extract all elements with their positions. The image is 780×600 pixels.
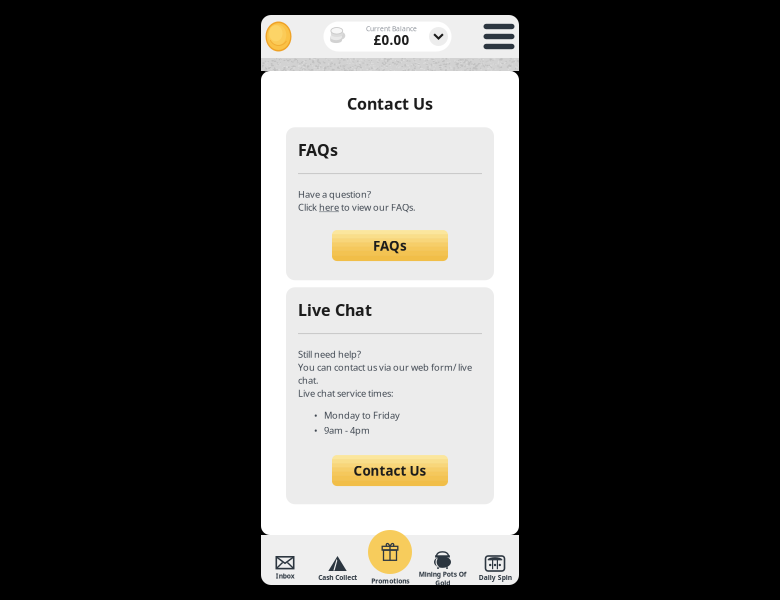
staticText: FAQs — [298, 139, 338, 160]
staticText: Cash Collect — [318, 573, 357, 582]
button[interactable]: Menu — [483, 24, 514, 49]
button[interactable]: Promotions — [364, 535, 416, 585]
staticText: here — [319, 201, 339, 213]
staticText: FAQs — [373, 237, 407, 254]
button[interactable]: Current Balance — [323, 21, 451, 51]
button[interactable]: Mining Pots Of Gold — [416, 535, 469, 585]
staticText: Promotions — [371, 577, 409, 585]
staticText: Still need help? — [298, 348, 361, 360]
staticText: Have a question? — [298, 188, 371, 200]
button[interactable]: Promotions — [368, 530, 412, 574]
staticText: Click — [298, 201, 319, 213]
button[interactable]: FAQs — [332, 230, 448, 261]
staticText: Live chat service times: — [298, 387, 394, 399]
button[interactable]: Coin balance — [265, 21, 291, 51]
staticText: Current Balance — [366, 24, 417, 33]
staticText: Daily Spin — [478, 573, 511, 582]
staticText: Contact Us — [347, 93, 433, 114]
staticText: • Monday to Friday — [314, 409, 400, 421]
staticText: Inbox — [275, 571, 294, 580]
button[interactable]: Daily Spin — [469, 535, 521, 585]
staticText: chat. — [298, 374, 319, 386]
staticText: Live Chat — [298, 299, 372, 320]
button[interactable]: Contact Us — [332, 455, 448, 486]
button[interactable]: Inbox — [259, 535, 311, 585]
button[interactable]: Cash Collect — [311, 535, 364, 585]
staticText: Mining Pots Of Gold — [418, 570, 466, 587]
button[interactable]: here — [319, 201, 339, 213]
staticText: Contact Us — [353, 462, 426, 479]
staticText: You can contact us via our web form/ liv… — [298, 361, 472, 373]
staticText: £0.00 — [373, 31, 409, 49]
staticText: to view our FAQs. — [339, 201, 416, 213]
staticText: • 9am - 4pm — [314, 424, 370, 436]
